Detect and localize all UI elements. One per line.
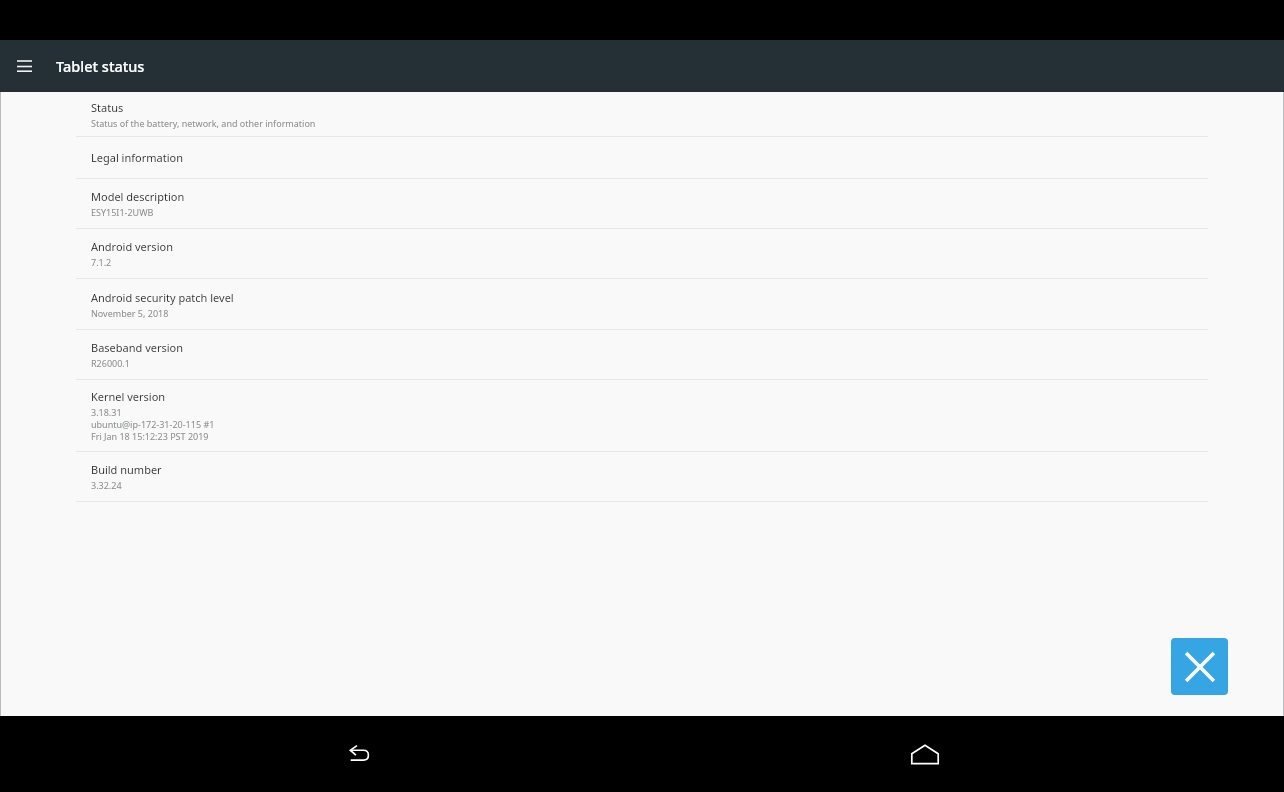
button[interactable]: Kernel version [0, 380, 1284, 451]
button[interactable]: Back [330, 726, 386, 782]
button[interactable]: Close [1171, 638, 1228, 695]
staticText: Legal information [91, 150, 183, 165]
staticText: ubuntu@ip-172-31-20-115 #1 [91, 418, 215, 430]
staticText: Build number [91, 462, 162, 477]
button[interactable]: Legal information [0, 137, 1284, 178]
button[interactable]: Open navigation drawer [0, 40, 48, 92]
staticText: Android version [91, 239, 173, 254]
button[interactable]: Model description [0, 179, 1284, 228]
staticText: Baseband version [91, 340, 184, 355]
staticText: 3.18.31 [91, 406, 122, 418]
staticText: Status of the battery, network, and othe… [91, 117, 316, 129]
button[interactable]: Android security patch level [0, 279, 1284, 329]
button[interactable]: Build number [0, 452, 1284, 501]
button[interactable]: Baseband version [0, 330, 1284, 379]
staticText: ESY15I1-2UWB [91, 206, 154, 218]
staticText: Tablet status [56, 56, 145, 76]
staticText: November 5, 2018 [91, 307, 169, 319]
staticText: Android security patch level [91, 290, 234, 305]
staticText: Model description [91, 189, 185, 204]
button[interactable]: Android version [0, 229, 1284, 278]
staticText: 3.32.24 [91, 479, 122, 491]
staticText: Kernel version [91, 389, 166, 404]
staticText: 7.1.2 [91, 256, 112, 268]
button[interactable]: Status [0, 92, 1284, 136]
staticText: Status [91, 100, 124, 115]
button[interactable]: Home [897, 726, 953, 782]
staticText: R26000.1 [91, 357, 130, 369]
staticText: Fri Jan 18 15:12:23 PST 2019 [91, 430, 209, 442]
